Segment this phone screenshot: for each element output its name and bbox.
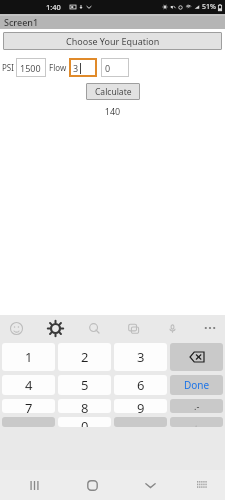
button[interactable]: 3 [69, 58, 97, 77]
button[interactable]: Calculate [86, 83, 140, 100]
button[interactable]: 9 [114, 399, 167, 413]
button[interactable]: 0 [101, 58, 129, 77]
button[interactable]: Backspace [170, 343, 223, 371]
staticText: 9 [137, 399, 145, 413]
staticText: 5 [81, 376, 89, 394]
button[interactable]: 8 [58, 399, 111, 413]
button[interactable]: More options [201, 318, 219, 338]
button[interactable]: Search [84, 318, 104, 338]
staticText: 140 [0, 105, 225, 117]
button[interactable]: .- [170, 399, 223, 413]
staticText: 8 [81, 399, 89, 413]
staticText: .- [194, 400, 200, 412]
staticText: 1 [25, 348, 33, 366]
staticText: 3 [137, 348, 145, 366]
staticText: , [195, 417, 198, 427]
staticText: 4 [25, 376, 33, 394]
button[interactable]: Switch keyboard [191, 474, 213, 496]
staticText: Calculate [95, 86, 132, 98]
staticText: Screen1 [4, 16, 39, 28]
button[interactable]: Emoji [6, 318, 26, 338]
button[interactable]: 2 [58, 343, 111, 371]
button[interactable]: 5 [58, 375, 111, 395]
button[interactable]: Choose Your Equation [3, 32, 222, 50]
staticText: 0 [81, 417, 89, 427]
button[interactable]: 1 [2, 343, 55, 371]
staticText: 7 [25, 399, 33, 413]
button[interactable]: 0 [58, 417, 111, 427]
button[interactable]: Settings [45, 318, 65, 338]
button[interactable]: Voice input [162, 318, 182, 338]
staticText: Choose Your Equation [66, 35, 160, 47]
staticText: Flow [49, 62, 67, 73]
button[interactable]: 7 [2, 399, 55, 413]
button[interactable]: Recents [22, 473, 46, 497]
button[interactable]: Done [170, 375, 223, 395]
staticText: 1500 [20, 62, 41, 74]
staticText: 1:40 [46, 2, 61, 12]
button[interactable]: Translate [123, 318, 143, 338]
button[interactable]: 4 [2, 375, 55, 395]
staticText: 2 [81, 348, 89, 366]
button[interactable]: 3 [114, 343, 167, 371]
button[interactable]: Home [80, 473, 104, 497]
button[interactable]: 1500 [16, 58, 46, 77]
button[interactable]: 6 [114, 375, 167, 395]
staticText: Done [184, 378, 210, 392]
staticText: 0 [105, 62, 111, 74]
staticText: 6 [137, 376, 145, 394]
staticText: 51% [202, 2, 216, 12]
staticText: 3 [73, 62, 79, 74]
button[interactable]: Back [138, 473, 162, 497]
staticText: PSI [2, 62, 14, 73]
